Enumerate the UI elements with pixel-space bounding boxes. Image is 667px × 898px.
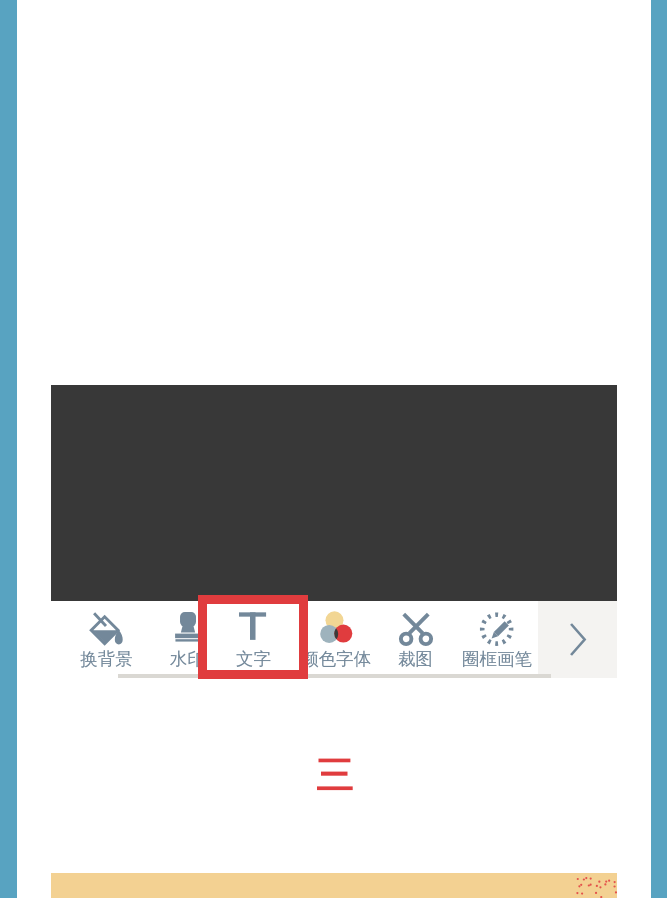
staticText: 换背景 [80,648,133,670]
button[interactable]: 换背景 [66,601,146,678]
staticText: 水印 [170,648,205,670]
staticText: 文字 [236,648,271,670]
button[interactable]: 圈框画笔 [456,601,537,678]
staticText: 颜色字体 [301,648,371,670]
staticText: 圈框画笔 [462,648,532,670]
staticText: 裁图 [398,648,433,670]
button[interactable]: 裁图 [375,601,456,678]
button[interactable]: 水印 [146,601,220,678]
button[interactable]: 文字 [220,601,294,678]
button[interactable]: More tools [538,601,617,678]
button[interactable]: 颜色字体 [294,601,375,678]
